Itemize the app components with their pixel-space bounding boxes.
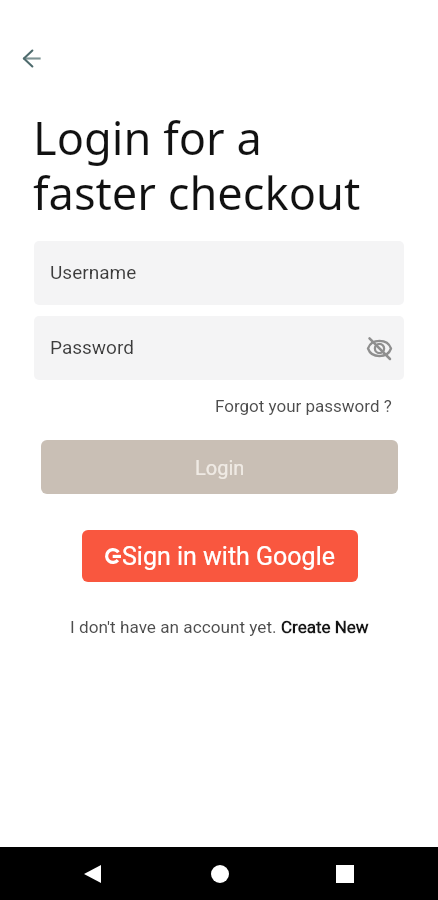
button[interactable]: Password	[34, 316, 404, 380]
button[interactable]: Forgot your password ?	[213, 392, 394, 420]
staticText: Forgot your password ?	[215, 396, 392, 416]
staticText: I don't have an account yet.	[70, 617, 281, 637]
button[interactable]: Create New	[281, 617, 369, 637]
button[interactable]: Show password	[363, 332, 395, 364]
staticText: Create New	[281, 617, 369, 637]
button[interactable]: Recent apps	[324, 853, 365, 894]
staticText: Sign in with Google	[122, 542, 335, 571]
button[interactable]: Back	[12, 38, 52, 78]
staticText: Username	[50, 261, 137, 283]
staticText: Login	[195, 456, 245, 479]
button[interactable]: Username	[34, 241, 404, 305]
button[interactable]: Sign in with Google	[82, 530, 358, 582]
button[interactable]: Back	[72, 853, 113, 894]
staticText: Password	[50, 336, 134, 358]
button[interactable]: Login	[41, 440, 398, 494]
button[interactable]: Home	[199, 853, 240, 894]
staticText: Login for a faster checkout	[33, 107, 361, 223]
